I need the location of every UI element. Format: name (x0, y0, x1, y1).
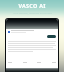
staticText: Build faster with smart templates (13, 16, 51, 19)
staticText: VASCO AI (18, 2, 46, 9)
staticText: Your website, designed in minutes (13, 11, 52, 14)
button[interactable]: Start building (47, 35, 56, 38)
